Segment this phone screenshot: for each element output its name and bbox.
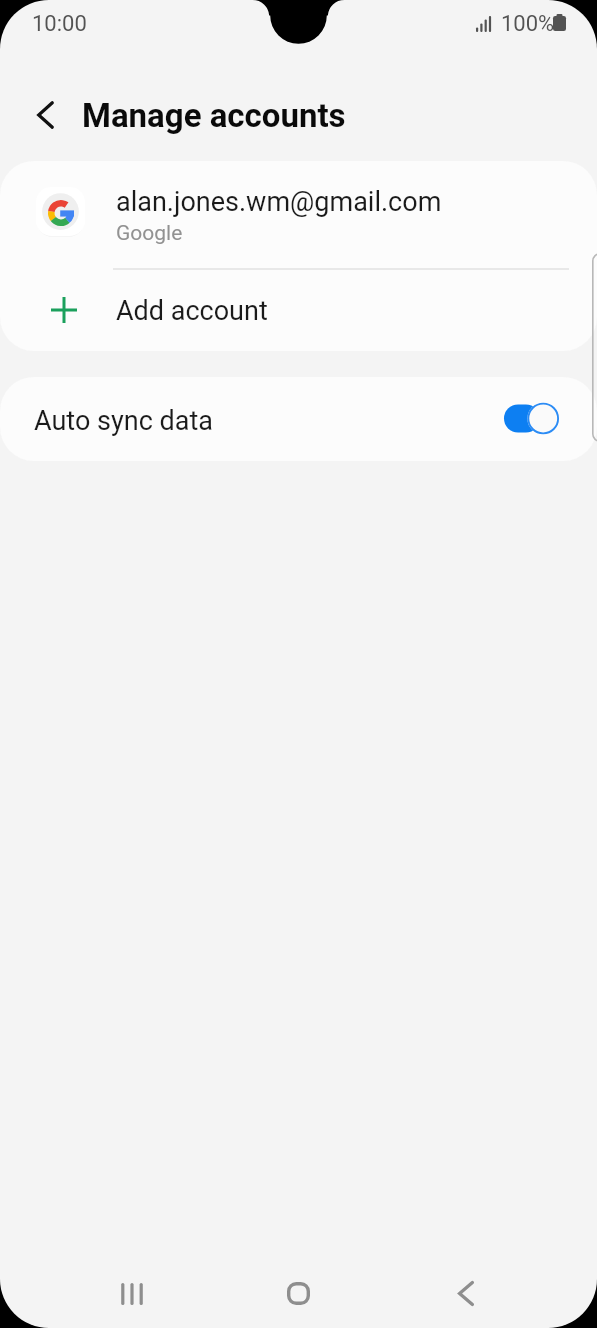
staticText: Google <box>116 221 183 246</box>
button[interactable]: Back <box>421 1249 510 1328</box>
button[interactable]: Auto sync data <box>504 401 559 436</box>
button[interactable]: Add account <box>0 268 597 350</box>
button[interactable]: Auto sync data <box>0 377 597 461</box>
staticText: Add account <box>116 295 268 327</box>
staticText: 100% <box>501 11 555 37</box>
staticText: Auto sync data <box>34 405 213 437</box>
staticText: 10:00 <box>32 11 87 37</box>
button[interactable]: Home <box>254 1249 343 1328</box>
button[interactable]: alan.jones.wm@gmail.com <box>0 161 597 268</box>
button[interactable]: Recent apps <box>87 1249 176 1328</box>
staticText: alan.jones.wm@gmail.com <box>116 186 442 218</box>
button[interactable]: Navigate up <box>22 91 69 138</box>
staticText: Manage accounts <box>82 96 346 135</box>
